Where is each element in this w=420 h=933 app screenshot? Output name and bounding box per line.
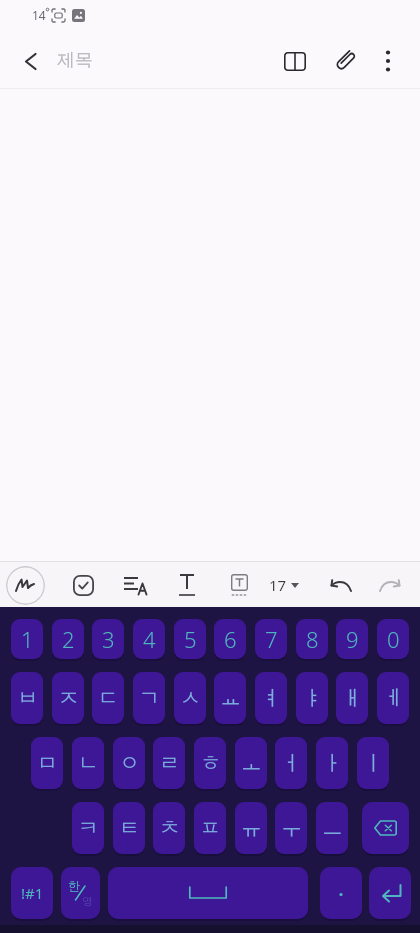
- staticText: ㅗ: [241, 750, 262, 776]
- button[interactable]: ㅔ: [377, 672, 409, 724]
- staticText: 17: [269, 575, 287, 595]
- staticText: ㅑ: [302, 685, 323, 711]
- staticText: ㅛ: [220, 685, 241, 711]
- button[interactable]: ㅈ: [52, 672, 84, 724]
- staticText: ㅈ: [58, 685, 79, 711]
- button[interactable]: 4: [133, 619, 165, 659]
- staticText: 제목: [57, 49, 93, 72]
- staticText: ㅎ: [200, 750, 221, 776]
- button[interactable]: [371, 566, 409, 604]
- staticText: ㅜ: [281, 815, 302, 841]
- button[interactable]: 3: [92, 619, 124, 659]
- staticText: ㄴ: [78, 750, 99, 776]
- staticText: 14: [32, 7, 46, 23]
- staticText: ㅡ: [322, 815, 343, 841]
- staticText: ㅍ: [200, 815, 221, 841]
- button[interactable]: ㅕ: [255, 672, 287, 724]
- staticText: 5: [184, 624, 197, 654]
- button[interactable]: ㅍ: [194, 802, 226, 854]
- staticText: ㅠ: [241, 815, 262, 841]
- button[interactable]: ㄱ: [133, 672, 165, 724]
- staticText: ㅂ: [17, 685, 38, 711]
- staticText: 1: [21, 624, 34, 654]
- staticText: ㅕ: [261, 685, 282, 711]
- staticText: ㅅ: [180, 685, 201, 711]
- button[interactable]: 6: [214, 619, 246, 659]
- staticText: ㄱ: [139, 685, 160, 711]
- button[interactable]: [362, 802, 409, 854]
- button[interactable]: ㅅ: [174, 672, 206, 724]
- staticText: ㄹ: [159, 750, 180, 776]
- button[interactable]: 8: [296, 619, 328, 659]
- button[interactable]: 17: [261, 566, 307, 604]
- staticText: ㅐ: [342, 685, 363, 711]
- button[interactable]: ㅑ: [296, 672, 328, 724]
- button[interactable]: [6, 566, 45, 605]
- button[interactable]: ㅂ: [11, 672, 43, 724]
- button[interactable]: ㄹ: [153, 737, 185, 789]
- staticText: 7: [265, 624, 278, 654]
- button[interactable]: ㅛ: [214, 672, 246, 724]
- button[interactable]: ㅗ: [235, 737, 267, 789]
- staticText: ㅊ: [159, 815, 180, 841]
- staticText: ㅋ: [78, 815, 99, 841]
- button[interactable]: ㅡ: [316, 802, 348, 854]
- button[interactable]: ㅓ: [275, 737, 307, 789]
- staticText: ㅁ: [37, 750, 58, 776]
- button[interactable]: [369, 42, 407, 80]
- button[interactable]: ㅜ: [275, 802, 307, 854]
- staticText: 한: [68, 878, 80, 893]
- staticText: 8: [306, 624, 319, 654]
- staticText: 영: [82, 894, 93, 908]
- button[interactable]: [322, 566, 360, 604]
- button[interactable]: [369, 867, 411, 919]
- button[interactable]: [12, 42, 50, 80]
- button[interactable]: ㅣ: [357, 737, 389, 789]
- button[interactable]: ㅐ: [336, 672, 368, 724]
- button[interactable]: 2: [52, 619, 84, 659]
- staticText: 6: [224, 624, 237, 654]
- button[interactable]: 한: [61, 867, 100, 919]
- button[interactable]: [168, 566, 206, 604]
- button[interactable]: ㅏ: [316, 737, 348, 789]
- button[interactable]: [276, 42, 314, 80]
- staticText: !#1: [21, 883, 44, 903]
- button[interactable]: ㄴ: [72, 737, 104, 789]
- button[interactable]: [320, 867, 362, 919]
- button[interactable]: ㅇ: [113, 737, 145, 789]
- button[interactable]: !#1: [11, 867, 53, 919]
- button[interactable]: [108, 867, 308, 919]
- staticText: ㅌ: [119, 815, 140, 841]
- staticText: 4: [143, 624, 156, 654]
- button[interactable]: 1: [11, 619, 43, 659]
- button[interactable]: ㄷ: [92, 672, 124, 724]
- button[interactable]: [64, 566, 102, 604]
- staticText: ㅔ: [383, 685, 404, 711]
- button[interactable]: [220, 566, 258, 604]
- staticText: 9: [346, 624, 359, 654]
- button[interactable]: ㅌ: [113, 802, 145, 854]
- button[interactable]: 0: [377, 619, 409, 659]
- staticText: ㅓ: [281, 750, 302, 776]
- button[interactable]: ㅋ: [72, 802, 104, 854]
- staticText: ㅏ: [322, 750, 343, 776]
- button[interactable]: 7: [255, 619, 287, 659]
- button[interactable]: ㅁ: [31, 737, 63, 789]
- button[interactable]: [326, 42, 364, 80]
- staticText: 0: [387, 624, 400, 654]
- button[interactable]: 5: [174, 619, 206, 659]
- button[interactable]: 9: [336, 619, 368, 659]
- staticText: ㄷ: [98, 685, 119, 711]
- button[interactable]: [117, 566, 155, 604]
- staticText: ㅣ: [363, 750, 384, 776]
- button[interactable]: ㅎ: [194, 737, 226, 789]
- staticText: ㅇ: [119, 750, 140, 776]
- staticText: 2: [62, 624, 75, 654]
- staticText: 3: [102, 624, 115, 654]
- button[interactable]: ㅊ: [153, 802, 185, 854]
- button[interactable]: ㅠ: [235, 802, 267, 854]
